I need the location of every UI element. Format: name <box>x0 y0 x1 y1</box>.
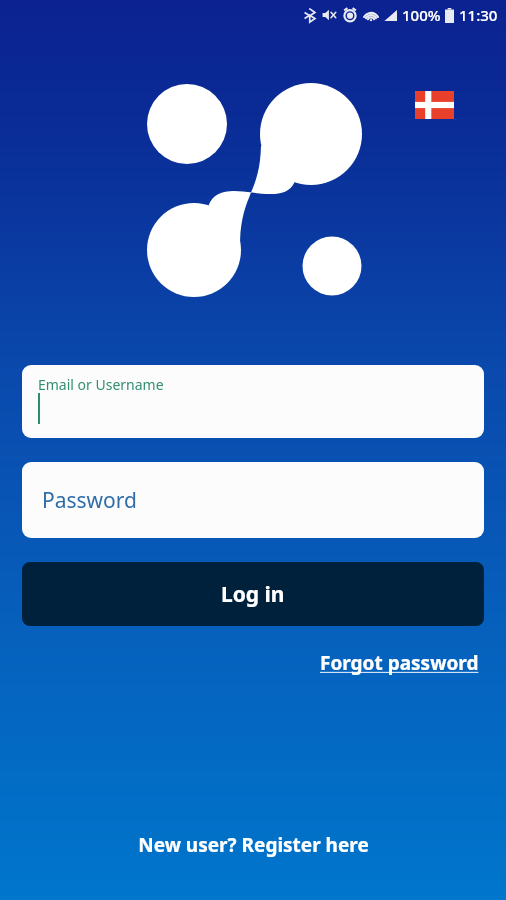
button[interactable]: Email or Username <box>22 365 484 438</box>
button[interactable]: Password <box>22 462 484 538</box>
button[interactable]: New user? Register here <box>0 828 506 862</box>
staticText: Password <box>42 486 137 515</box>
staticText: Forgot password <box>320 650 479 676</box>
staticText: New user? Register here <box>138 832 369 858</box>
staticText: 100% <box>402 5 441 25</box>
staticText: 11:30 <box>459 5 498 25</box>
staticText: Email or Username <box>38 375 164 394</box>
staticText: Log in <box>221 580 285 609</box>
button[interactable]: Log in <box>22 562 484 626</box>
button[interactable]: Select language: Danish <box>415 91 454 119</box>
button[interactable]: Forgot password <box>320 646 479 680</box>
